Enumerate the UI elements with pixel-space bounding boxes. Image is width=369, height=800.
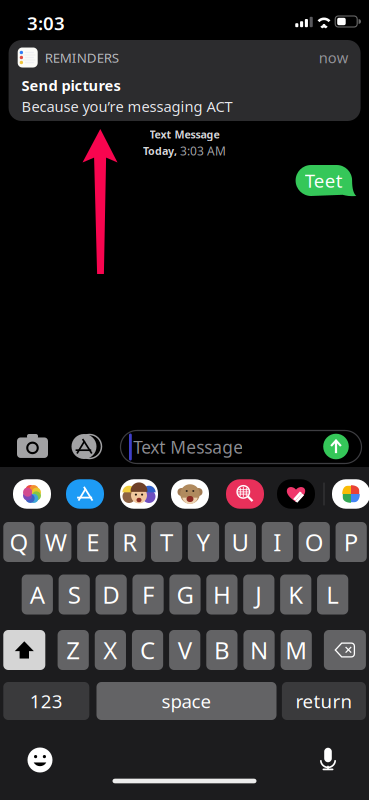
button[interactable]: REMINDERS [9,40,361,121]
staticText: E [86,526,99,558]
button[interactable]: Y [188,522,219,562]
staticText: Because you’re messaging ACT [22,96,233,116]
staticText: Text Message [149,127,219,141]
button[interactable]: return [282,682,366,720]
staticText: O [305,526,324,558]
button[interactable]: C [132,630,163,670]
staticText: Q [9,526,28,558]
staticText: 123 [30,689,63,713]
button[interactable]: 123 [3,682,89,720]
staticText: A [30,579,45,610]
staticText: Text Message [133,435,243,458]
button[interactable]: A [22,574,53,614]
button[interactable]: Q [3,522,34,562]
button[interactable]: I [262,522,293,562]
staticText: U [231,526,249,558]
button[interactable]: D [95,574,127,614]
staticText: P [344,526,359,558]
button[interactable]: Dictate [311,742,345,776]
button[interactable]: F [132,574,164,614]
staticText: X [103,634,117,666]
button[interactable] [120,479,158,509]
button[interactable]: P [336,522,367,562]
button[interactable]: Z [58,630,89,670]
staticText: Z [66,634,80,666]
staticText: 3:03 [27,11,65,35]
staticText: S [68,579,81,610]
staticText: space [161,689,211,713]
staticText: return [295,689,352,713]
staticText: M [285,634,307,666]
button[interactable]: W [40,522,71,562]
staticText: T [160,526,173,558]
button[interactable] [171,479,209,509]
staticText: R [122,526,137,558]
button[interactable]: O [299,522,330,562]
button[interactable] [13,479,51,509]
staticText: 3:03 AM [180,143,226,159]
button[interactable]: Send [323,434,349,459]
button[interactable]: Apps [68,433,99,459]
staticText: Y [196,526,210,558]
staticText: D [102,579,120,610]
staticText: N [250,634,268,666]
staticText: H [213,579,231,610]
staticText: J [255,579,262,610]
button[interactable] [277,479,315,509]
button[interactable]: X [95,630,126,670]
button[interactable]: Shift [3,630,45,670]
button[interactable] [332,479,369,509]
button[interactable]: N [243,630,275,670]
staticText: now [319,48,349,67]
button[interactable]: Emoji [23,743,57,777]
button[interactable]: L [317,574,348,614]
staticText: Today, [143,144,177,158]
button[interactable]: H [206,574,237,614]
staticText: W [45,526,67,558]
button[interactable]: Camera [16,433,48,459]
button[interactable]: U [225,522,256,562]
button[interactable]: Text Message [120,430,361,463]
staticText: Send pictures [22,75,121,95]
button[interactable] [66,479,104,509]
button[interactable]: K [280,574,311,614]
button[interactable]: Delete [324,630,366,670]
staticText: Teet [305,168,343,193]
staticText: L [326,579,339,610]
button[interactable]: E [77,522,108,562]
staticText: G [176,579,193,610]
staticText: REMINDERS [45,49,119,66]
button[interactable] [226,479,264,509]
button[interactable]: T [151,522,182,562]
button[interactable]: J [243,574,274,614]
button[interactable]: space [96,682,276,720]
staticText: F [142,579,154,610]
staticText: K [288,579,303,610]
staticText: B [214,634,230,666]
staticText: V [178,634,192,666]
staticText: I [273,526,281,558]
button[interactable]: V [169,630,200,670]
button[interactable]: R [114,522,145,562]
button[interactable]: G [169,574,201,614]
staticText: C [140,634,155,666]
button[interactable]: M [281,630,312,670]
button[interactable]: S [59,574,90,614]
button[interactable]: B [206,630,237,670]
